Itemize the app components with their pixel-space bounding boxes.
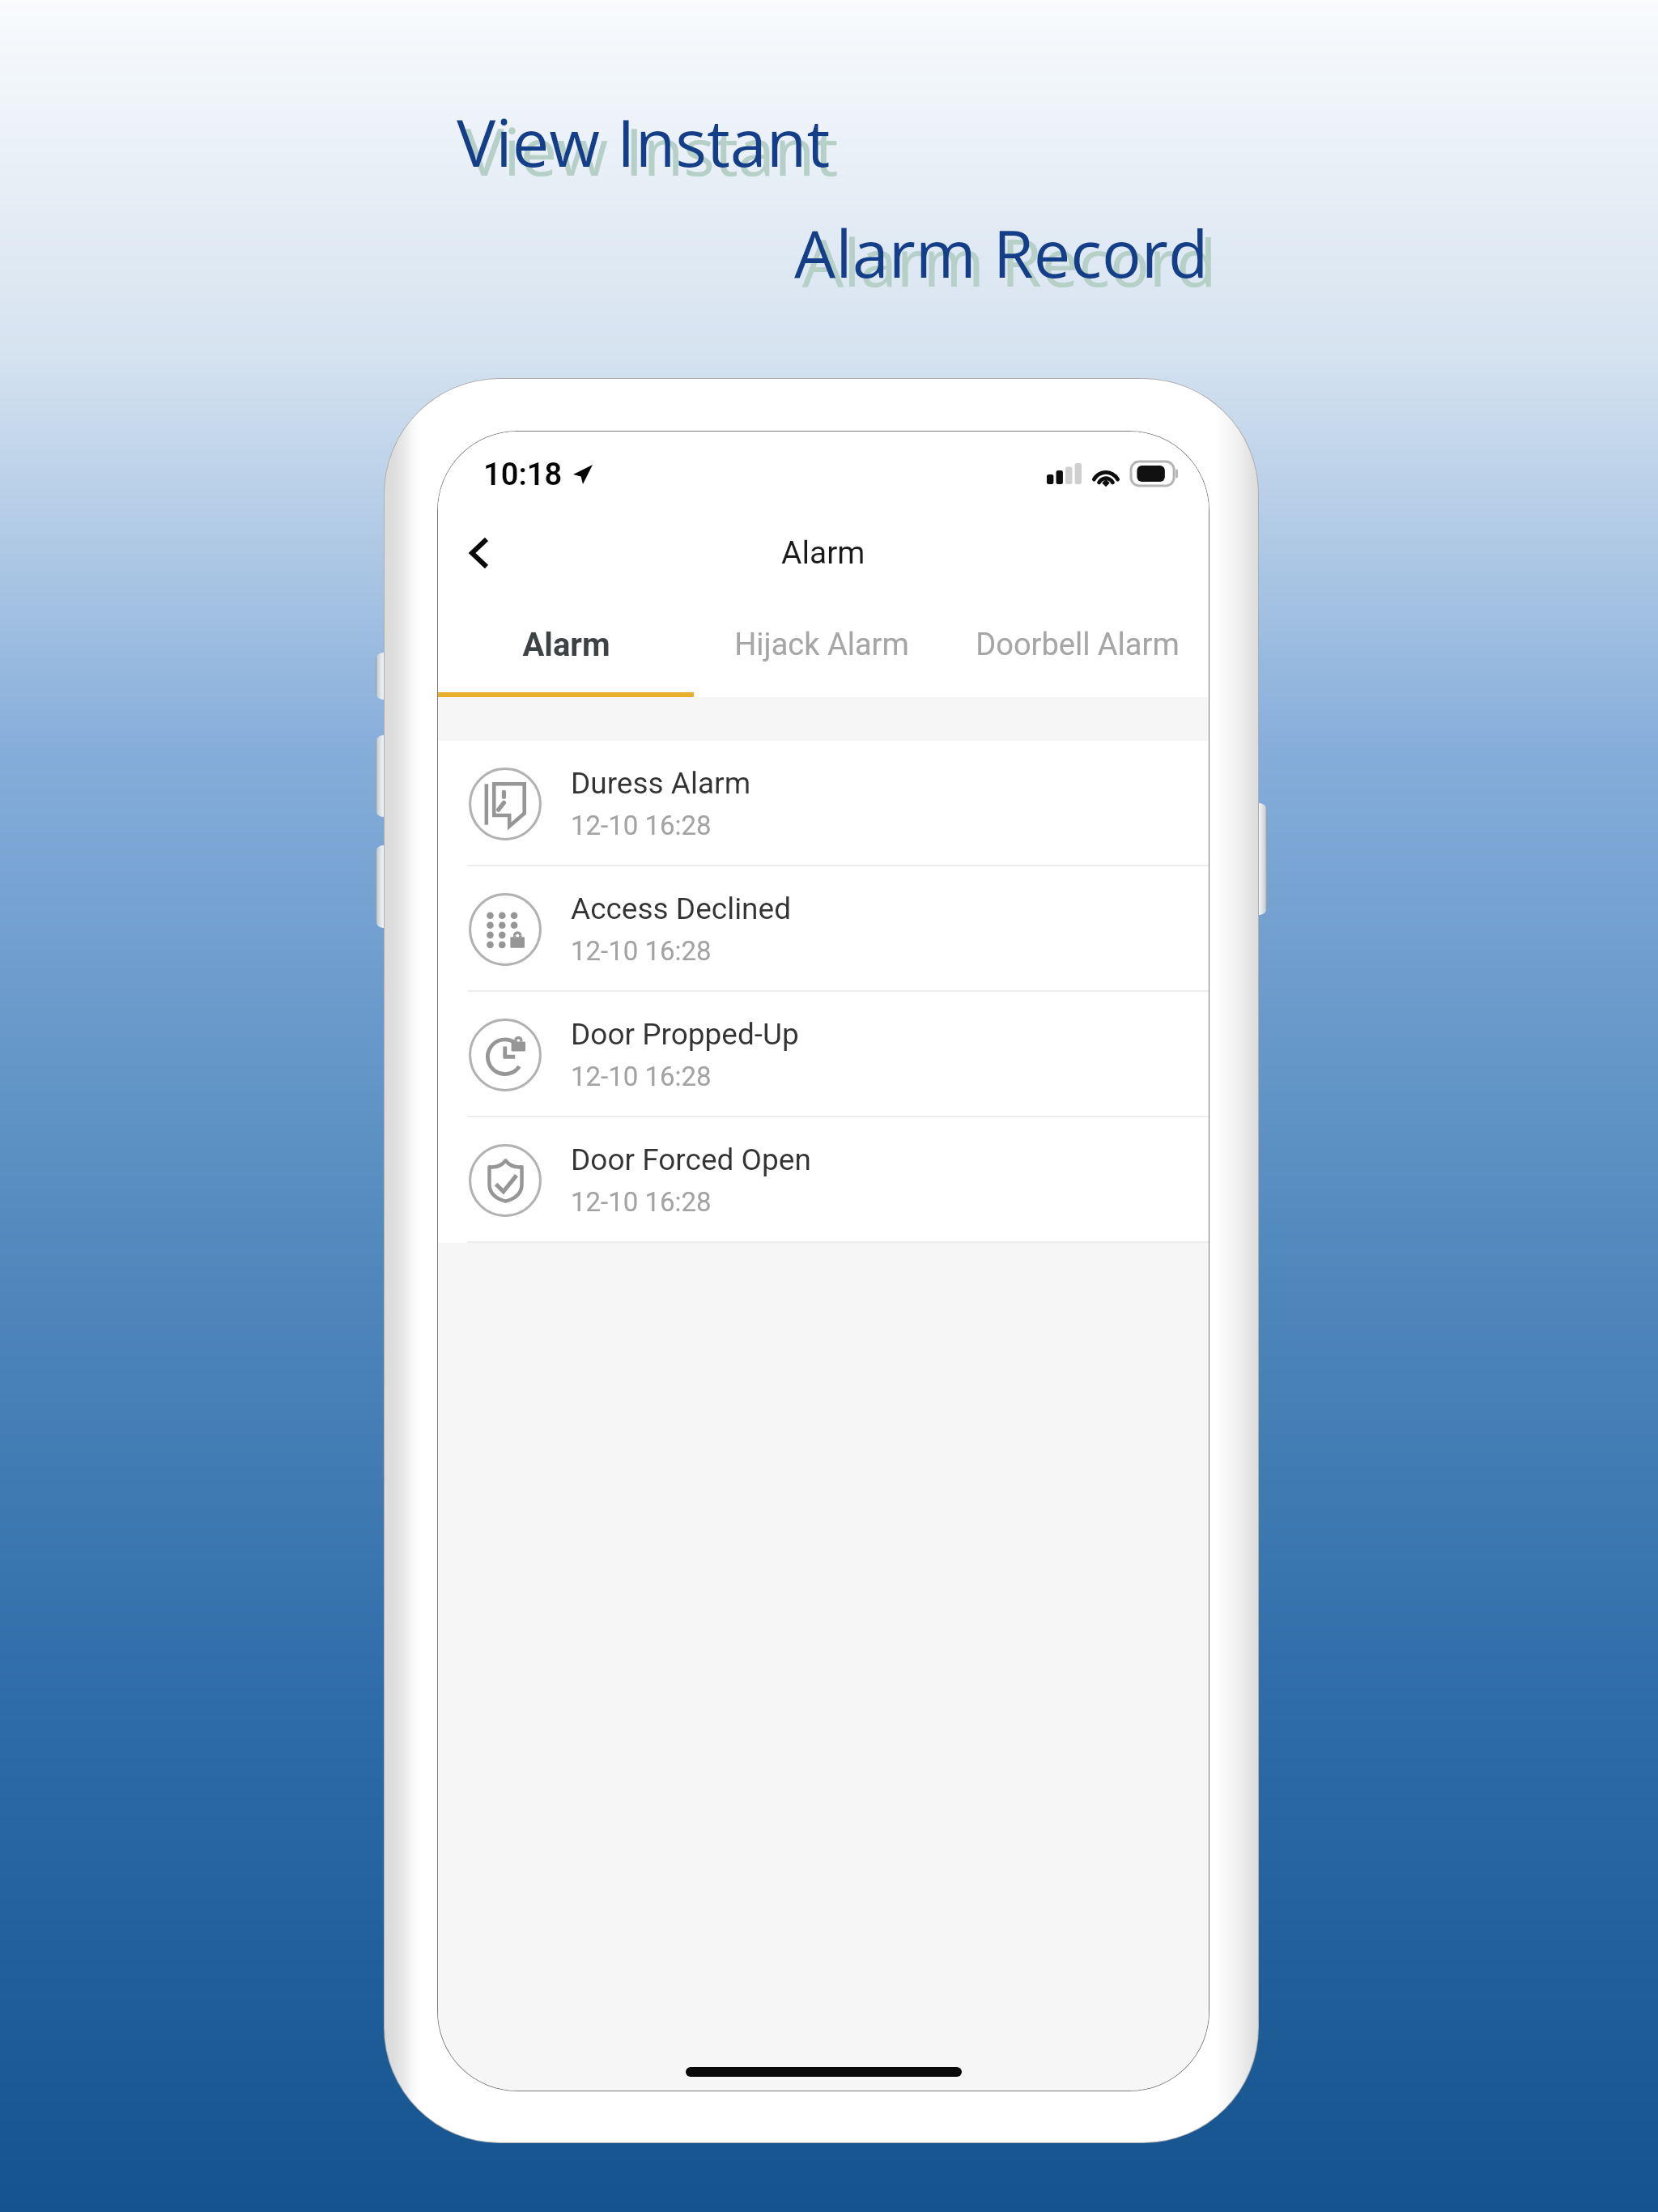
staticText: Door Propped-Up	[571, 1017, 799, 1052]
staticText: Alarm	[781, 534, 865, 572]
button[interactable]: Hijack Alarm	[694, 602, 950, 697]
button[interactable]: Door Forced Open	[438, 1117, 1209, 1243]
staticText: Access Declined	[571, 891, 792, 926]
staticText: 10:18	[483, 457, 563, 493]
staticText: Doorbell Alarm	[976, 627, 1180, 663]
button[interactable]: Duress Alarm	[438, 741, 1209, 866]
staticText: Alarm	[522, 626, 610, 664]
staticText: Alarm Record	[802, 216, 1217, 305]
staticText: 12-10 16:28	[571, 810, 712, 841]
staticText: View Instant	[465, 105, 839, 194]
staticText: Door Forced Open	[571, 1142, 811, 1177]
staticText: 12-10 16:28	[571, 935, 712, 967]
staticText: View Instant	[457, 96, 831, 185]
button[interactable]: Back	[438, 509, 523, 597]
button[interactable]: Doorbell Alarm	[950, 602, 1205, 697]
staticText: Hijack Alarm	[734, 627, 909, 663]
staticText: Alarm Record	[794, 207, 1209, 296]
staticText: Duress Alarm	[571, 766, 751, 801]
staticText: 12-10 16:28	[571, 1186, 712, 1218]
button[interactable]: Door Propped-Up	[438, 992, 1209, 1117]
button[interactable]: Access Declined	[438, 866, 1209, 992]
button[interactable]: Alarm	[438, 602, 694, 697]
staticText: 12-10 16:28	[571, 1061, 712, 1092]
